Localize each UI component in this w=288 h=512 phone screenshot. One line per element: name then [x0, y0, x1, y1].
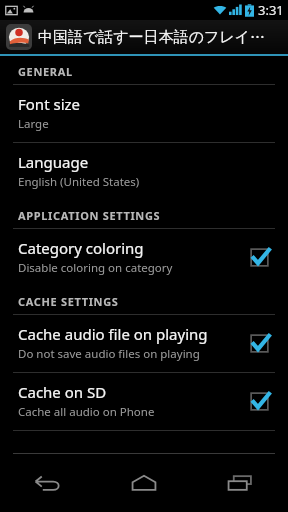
staticText: 中国語で話すー日本語のフレイズブ… — [38, 28, 280, 47]
staticText: Large — [18, 116, 49, 132]
staticText: Disable coloring on category — [18, 260, 173, 276]
button[interactable]: Toggle setting — [244, 328, 274, 358]
staticText: 3:31 — [258, 1, 284, 19]
button[interactable]: Cache on SD — [0, 373, 288, 430]
staticText: Cache on SD — [18, 382, 107, 402]
button[interactable]: Home — [96, 454, 192, 512]
staticText: Category coloring — [18, 238, 144, 258]
staticText: Font size — [18, 94, 81, 114]
button[interactable]: Font size — [0, 85, 288, 142]
button[interactable]: Language — [0, 143, 288, 200]
button[interactable]: Toggle setting — [244, 386, 274, 416]
button[interactable]: Toggle setting — [244, 242, 274, 272]
staticText: English (United States) — [18, 174, 140, 190]
button[interactable]: Category coloring — [0, 229, 288, 286]
button[interactable]: Recent apps — [192, 454, 288, 512]
staticText: CACHE SETTINGS — [18, 294, 119, 309]
staticText: APPLICATION SETTINGS — [18, 208, 161, 223]
button[interactable]: 中国語で話すー日本語のフレイズブ… — [0, 20, 288, 54]
staticText: GENERAL — [18, 64, 73, 79]
staticText: Language — [18, 152, 89, 172]
button[interactable]: Cache audio file on playing — [0, 315, 288, 372]
staticText: Cache audio file on playing — [18, 324, 208, 344]
staticText: Cache all audio on Phone — [18, 404, 155, 420]
button[interactable]: Back — [0, 454, 96, 512]
staticText: Do not save audio files on playing — [18, 346, 200, 362]
